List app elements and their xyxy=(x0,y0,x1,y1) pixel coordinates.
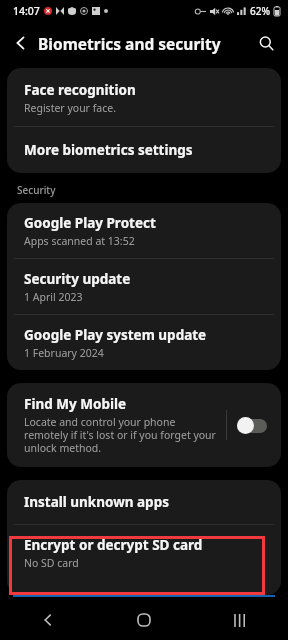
staticText: Encrypt or decrypt SD card xyxy=(24,536,203,554)
staticText: Google Play system update xyxy=(24,326,207,344)
button[interactable]: Home xyxy=(96,600,192,640)
staticText: Apps scanned at 13:52 xyxy=(24,234,135,248)
staticText: 1 April 2023 xyxy=(24,290,83,304)
button[interactable]: Recent apps xyxy=(192,600,288,640)
button[interactable]: Google Play Protect xyxy=(7,203,281,258)
button[interactable]: Google Play system update xyxy=(7,315,281,370)
staticText: No SD card xyxy=(24,556,79,570)
button[interactable]: Install unknown apps xyxy=(7,480,281,524)
staticText: Face recognition xyxy=(24,81,136,99)
staticText: Install unknown apps xyxy=(24,493,169,511)
button[interactable]: Security update xyxy=(7,259,281,314)
button[interactable]: Search xyxy=(251,28,281,58)
button[interactable]: Encrypt or decrypt SD card xyxy=(7,525,281,581)
staticText: Security update xyxy=(24,270,131,288)
staticText: Security xyxy=(17,183,56,197)
staticText: Biometrics and security xyxy=(38,33,221,54)
staticText: More biometrics settings xyxy=(24,141,193,159)
staticText: 62% xyxy=(250,4,270,18)
button[interactable]: Find My Mobile toggle xyxy=(237,417,267,434)
staticText: Locate and control your phone remotely i… xyxy=(24,415,218,455)
staticText: Register your face. xyxy=(24,101,116,115)
button[interactable]: Find My Mobile xyxy=(7,383,281,467)
staticText: Find My Mobile xyxy=(24,395,127,413)
button[interactable]: More biometrics settings xyxy=(7,127,281,173)
staticText: Google Play Protect xyxy=(24,214,156,232)
button[interactable]: Face recognition xyxy=(7,68,281,126)
button[interactable]: Other security settings xyxy=(7,586,281,595)
button[interactable]: Back xyxy=(0,600,96,640)
button[interactable]: Back xyxy=(6,28,36,58)
staticText: 1 February 2024 xyxy=(24,346,104,360)
staticText: 14:07 xyxy=(13,4,40,18)
